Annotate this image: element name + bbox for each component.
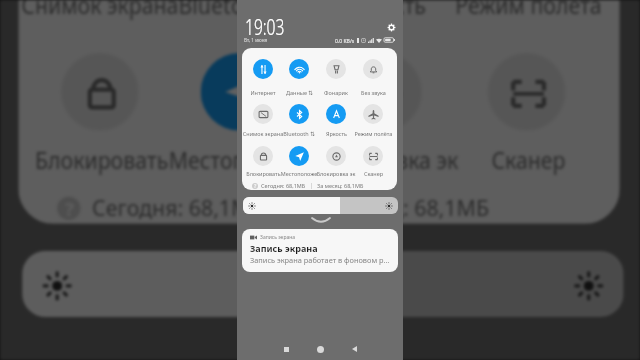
staticText: ? bbox=[254, 183, 257, 189]
button[interactable]: Back bbox=[337, 336, 371, 360]
staticText: Сканер bbox=[491, 146, 566, 177]
button[interactable]: Местоположе bbox=[281, 146, 317, 178]
staticText: Блокировка эк bbox=[307, 146, 459, 177]
staticText: Запись экрана bbox=[260, 234, 296, 241]
staticText: ? bbox=[65, 197, 76, 220]
staticText: 19:03 bbox=[245, 13, 285, 42]
button[interactable]: Режим полёта bbox=[457, 0, 596, 14]
button[interactable]: Сканер bbox=[355, 146, 391, 178]
staticText: Блокировать bbox=[35, 146, 168, 177]
staticText: Сегодня: 68,1МБ bbox=[92, 193, 267, 220]
staticText: За месяц: 68,1МБ bbox=[317, 182, 364, 189]
button[interactable]: Данные ⇅ bbox=[281, 59, 317, 91]
staticText: Яркость bbox=[326, 130, 347, 138]
staticText: Интернет bbox=[250, 89, 276, 97]
button[interactable]: Снимок экрана bbox=[245, 104, 281, 136]
button[interactable]: Bluetooth ⇅ bbox=[170, 0, 309, 14]
button[interactable]: Bluetooth ⇅ bbox=[281, 104, 317, 136]
staticText: Блокировать bbox=[246, 170, 281, 178]
button[interactable]: Яркость bbox=[313, 0, 453, 14]
button[interactable]: Местоположе bbox=[170, 53, 309, 177]
staticText: Сканер bbox=[364, 170, 383, 178]
staticText: Снимок экрана bbox=[242, 130, 283, 138]
button[interactable]: Блокировка эк bbox=[318, 146, 354, 178]
staticText: Режим полёта bbox=[454, 0, 602, 22]
button[interactable]: Фонарик bbox=[318, 59, 354, 91]
button[interactable]: Без звука bbox=[355, 59, 391, 91]
staticText: За месяц: 68,1МБ bbox=[309, 193, 492, 220]
button[interactable]: Recents bbox=[269, 336, 303, 360]
staticText: Местоположе bbox=[280, 170, 318, 178]
button[interactable]: Режим полёта bbox=[355, 104, 391, 136]
staticText: Сегодня: 68,1МБ bbox=[261, 182, 306, 189]
button[interactable]: Яркость bbox=[318, 104, 354, 136]
staticText: Блокировка эк bbox=[316, 170, 356, 178]
button[interactable]: Интернет bbox=[245, 59, 281, 91]
button[interactable]: Запись экрана bbox=[242, 229, 398, 272]
button[interactable]: Settings bbox=[386, 22, 397, 33]
staticText: Вт, 1 июня bbox=[244, 37, 268, 43]
staticText: 0,0 KB/s bbox=[335, 37, 354, 43]
staticText: Яркость bbox=[343, 0, 426, 22]
button[interactable]: Home bbox=[303, 336, 337, 360]
button[interactable]: Brightness bbox=[22, 251, 624, 317]
staticText: Bluetooth ⇅ bbox=[178, 0, 301, 22]
staticText: Режим полёта bbox=[354, 130, 392, 138]
button[interactable]: Brightness bbox=[243, 197, 398, 214]
staticText: Данные ⇅ bbox=[286, 89, 313, 97]
button[interactable]: Снимок экрана bbox=[30, 0, 170, 14]
staticText: Bluetooth ⇅ bbox=[283, 130, 315, 138]
staticText: Запись экрана работает в фоновом р… bbox=[250, 255, 390, 265]
staticText: Снимок экрана bbox=[20, 0, 179, 22]
button[interactable]: Блокировать bbox=[245, 146, 281, 178]
staticText: Фонарик bbox=[324, 89, 348, 97]
staticText: Запись экрана bbox=[250, 242, 318, 254]
button[interactable]: Блокировка эк bbox=[313, 53, 453, 177]
button[interactable]: Сканер bbox=[457, 53, 596, 177]
staticText: Без звука bbox=[361, 89, 386, 97]
staticText: Местоположе bbox=[167, 146, 312, 177]
button[interactable]: Блокировать bbox=[30, 53, 170, 177]
